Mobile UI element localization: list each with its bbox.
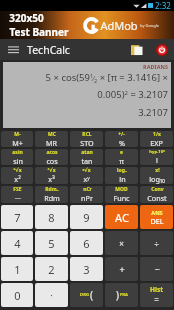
button[interactable]: Divide: [140, 231, 173, 255]
button[interactable]: Minus: [140, 257, 173, 281]
button[interactable]: 8: [35, 205, 68, 229]
staticText: EXP: [150, 138, 163, 147]
button[interactable]: 4: [1, 231, 33, 255]
button[interactable]: MOD: [105, 186, 138, 203]
staticText: x!: [155, 167, 160, 174]
button[interactable]: Close parenthesis: [105, 283, 138, 307]
staticText: −: [154, 263, 160, 275]
staticText: asin: [12, 149, 23, 156]
staticText: 5 × cos(591⁄2 × [π = 3.1416] ×: [45, 71, 168, 84]
staticText: ): [116, 288, 119, 302]
button[interactable]: hyp-10ˣ: [140, 149, 173, 165]
button[interactable]: Multiply: [105, 231, 138, 255]
staticText: +: [119, 263, 125, 275]
staticText: Conv: [151, 186, 164, 193]
staticText: π: [119, 156, 124, 165]
staticText: tan: [81, 156, 93, 165]
staticText: 0.005)2 = 3.2107: [97, 88, 168, 101]
button[interactable]: 0: [1, 283, 33, 307]
staticText: nCr: [83, 186, 92, 193]
staticText: Rdm: [44, 193, 60, 203]
staticText: %: [119, 138, 125, 147]
staticText: 2: [48, 262, 55, 277]
button[interactable]: 2: [35, 257, 68, 281]
button[interactable]: e: [105, 149, 138, 165]
button[interactable]: 6: [70, 231, 103, 255]
staticText: ·: [50, 289, 53, 301]
button[interactable]: Rdmₙ: [35, 186, 68, 203]
button[interactable]: AC: [105, 205, 138, 229]
staticText: MC: [48, 131, 56, 138]
button[interactable]: Hist: [140, 283, 173, 307]
button[interactable]: Conv: [140, 186, 173, 203]
button[interactable]: ˣ√x: [70, 167, 103, 184]
button[interactable]: M-: [1, 131, 33, 147]
staticText: FSE: [13, 186, 22, 193]
button[interactable]: Menu: [0, 39, 27, 60]
staticText: RADIANS: [143, 63, 168, 70]
staticText: logₙ: [117, 167, 127, 174]
staticText: AC: [115, 210, 129, 225]
staticText: 2:32: [155, 0, 171, 11]
staticText: 5: [48, 236, 55, 251]
button[interactable]: acos: [35, 149, 68, 165]
button[interactable]: atan: [70, 149, 103, 165]
staticText: (: [90, 288, 93, 302]
button[interactable]: 1/x: [140, 131, 173, 147]
staticText: Const: [147, 193, 167, 203]
button[interactable]: nCr: [70, 186, 103, 203]
button[interactable]: 9: [70, 205, 103, 229]
button[interactable]: 5: [35, 231, 68, 255]
staticText: ²√x: [13, 167, 22, 174]
button[interactable]: Power off: [149, 39, 174, 60]
staticText: 8: [48, 210, 55, 225]
staticText: hyp-10ˣ: [149, 149, 165, 155]
button[interactable]: 1: [1, 257, 33, 281]
staticText: TechCalc: [27, 43, 70, 57]
staticText: ANS: [151, 209, 163, 216]
button[interactable]: RADIANS: [3, 62, 171, 128]
staticText: ···: [15, 193, 21, 203]
button[interactable]: FSE: [1, 186, 33, 203]
staticText: RCL: [82, 131, 92, 138]
button[interactable]: Decimal point: [35, 283, 68, 307]
staticText: ÷: [154, 238, 159, 249]
staticText: 6: [83, 236, 90, 251]
button[interactable]: ANS: [140, 205, 173, 229]
button[interactable]: Open parenthesis: [70, 283, 103, 307]
button[interactable]: +/-: [105, 131, 138, 147]
button[interactable]: Clipboard: [124, 39, 149, 60]
staticText: =: [154, 294, 159, 305]
staticText: M+: [12, 138, 23, 147]
staticText: 4: [14, 236, 21, 251]
staticText: nPr: [81, 193, 93, 203]
staticText: log₁₀: [149, 174, 165, 184]
staticText: STO: [80, 138, 94, 147]
staticText: 1/x: [153, 131, 161, 138]
staticText: sin: [13, 156, 23, 165]
staticText: AdMob: [100, 18, 138, 33]
staticText: 3: [83, 262, 90, 277]
button[interactable]: ²√x: [1, 167, 33, 184]
button[interactable]: asin: [1, 149, 33, 165]
staticText: 9: [83, 210, 90, 225]
staticText: ˣ√x: [82, 167, 91, 174]
button[interactable]: ³√x: [35, 167, 68, 184]
button[interactable]: MC: [35, 131, 68, 147]
staticText: ln: [119, 174, 126, 184]
button[interactable]: x!: [140, 167, 173, 184]
button[interactable]: RCL: [70, 131, 103, 147]
staticText: 0: [14, 288, 21, 303]
button[interactable]: logₙ: [105, 167, 138, 184]
button[interactable]: 3: [70, 257, 103, 281]
staticText: DRG: [80, 292, 89, 298]
staticText: by Google: [140, 23, 159, 28]
staticText: atan: [81, 149, 93, 156]
button[interactable]: Advertisement: [0, 11, 174, 39]
staticText: x³: [48, 174, 55, 184]
staticText: M-: [14, 131, 21, 138]
staticText: 7: [14, 210, 21, 225]
button[interactable]: 7: [1, 205, 33, 229]
button[interactable]: Plus: [105, 257, 138, 281]
staticText: xʸ: [83, 174, 90, 184]
